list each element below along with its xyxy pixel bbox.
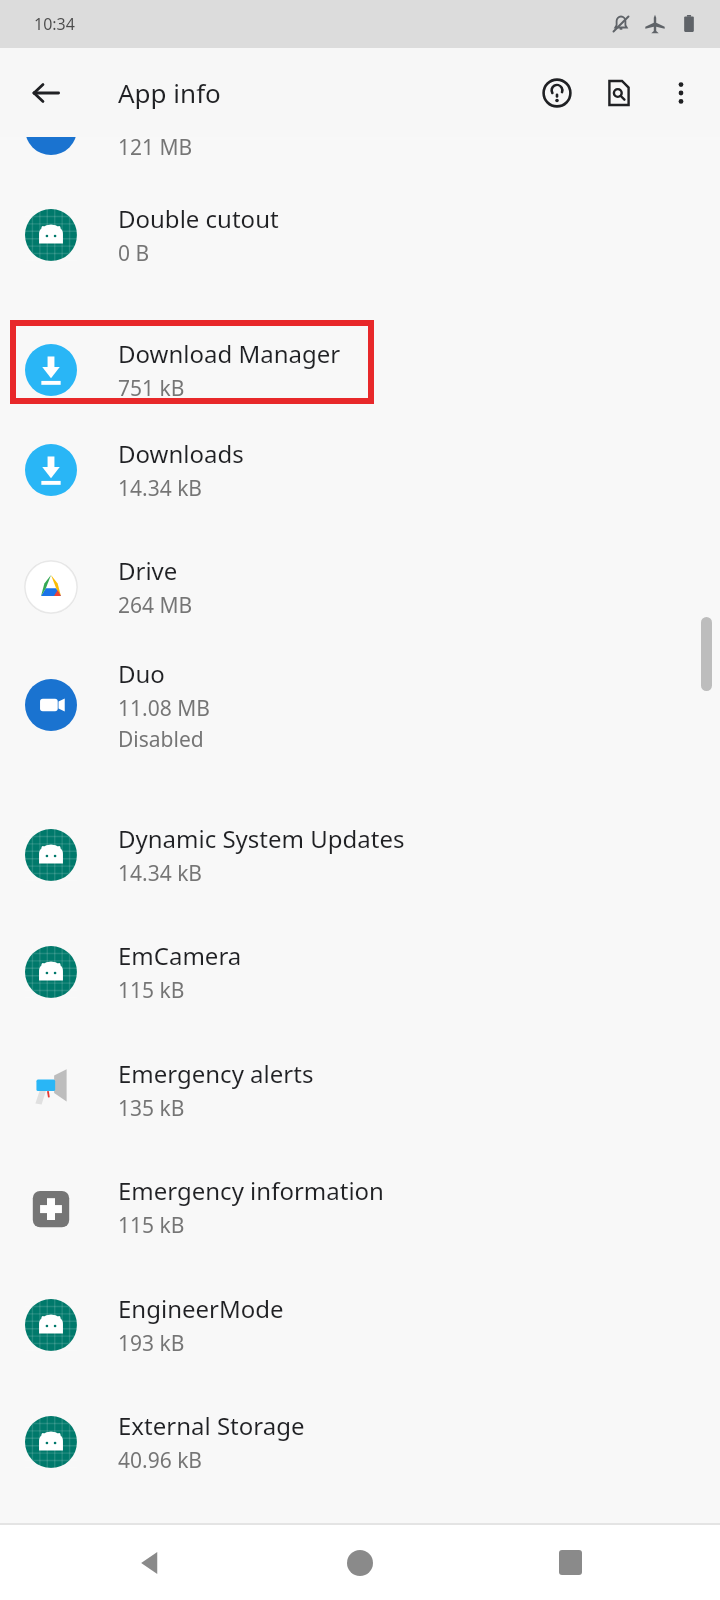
staticText: 121 MB bbox=[118, 133, 193, 162]
staticText: 0 B bbox=[118, 239, 150, 268]
button[interactable]: Duo bbox=[0, 655, 720, 755]
button[interactable]: Home bbox=[320, 1525, 400, 1600]
button[interactable]: Downloads bbox=[0, 420, 720, 520]
button[interactable]: Dynamic System Updates bbox=[0, 805, 720, 905]
staticText: Disabled bbox=[118, 725, 204, 754]
staticText: External Storage bbox=[118, 1409, 305, 1442]
button[interactable]: External Storage bbox=[0, 1392, 720, 1492]
staticText: 135 kB bbox=[118, 1094, 185, 1123]
staticText: 11.08 MB bbox=[118, 694, 210, 723]
button[interactable]: EmCamera bbox=[0, 922, 720, 1022]
staticText: 115 kB bbox=[118, 1211, 185, 1240]
button[interactable]: Back bbox=[16, 63, 76, 123]
button[interactable]: Download Manager bbox=[0, 320, 720, 420]
staticText: 14.34 kB bbox=[118, 474, 202, 503]
staticText: Drive bbox=[118, 554, 178, 587]
staticText: 751 kB bbox=[118, 374, 185, 403]
staticText: Downloads bbox=[118, 437, 244, 470]
staticText: Emergency information bbox=[118, 1174, 384, 1207]
staticText: 264 MB bbox=[118, 591, 193, 620]
button[interactable]: Emergency information bbox=[0, 1157, 720, 1257]
staticText: EmCamera bbox=[118, 939, 242, 972]
staticText: 14.34 kB bbox=[118, 859, 202, 888]
button[interactable]: Back bbox=[110, 1525, 190, 1600]
staticText: Device personalisation bbox=[118, 96, 373, 129]
button[interactable]: Device personalisation bbox=[0, 79, 720, 179]
staticText: 10:34 bbox=[34, 13, 75, 35]
button[interactable]: More options bbox=[650, 62, 712, 124]
staticText: EngineerMode bbox=[118, 1292, 284, 1325]
button[interactable]: EngineerMode bbox=[0, 1275, 720, 1375]
staticText: Emergency alerts bbox=[118, 1057, 314, 1090]
staticText: Double cutout bbox=[118, 202, 279, 235]
staticText: 115 kB bbox=[118, 976, 185, 1005]
button[interactable]: Emergency alerts bbox=[0, 1040, 720, 1140]
button[interactable]: Search app list bbox=[588, 62, 650, 124]
staticText: Duo bbox=[118, 657, 165, 690]
button[interactable]: Help bbox=[526, 62, 588, 124]
button[interactable]: Drive bbox=[0, 537, 720, 637]
staticText: 193 kB bbox=[118, 1329, 185, 1358]
button[interactable]: Double cutout bbox=[0, 185, 720, 285]
staticText: App info bbox=[118, 75, 221, 110]
button[interactable]: Recent apps bbox=[530, 1525, 610, 1600]
staticText: Download Manager bbox=[118, 337, 341, 370]
staticText: 40.96 kB bbox=[118, 1446, 202, 1475]
staticText: Dynamic System Updates bbox=[118, 822, 405, 855]
